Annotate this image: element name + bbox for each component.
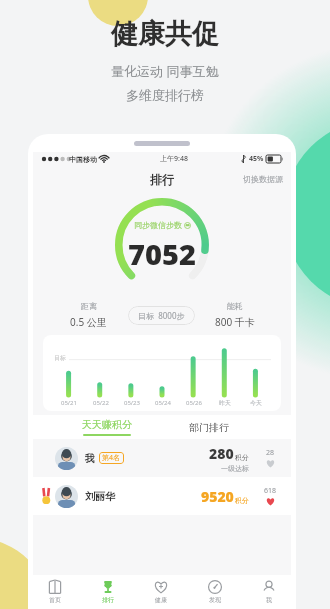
button[interactable]: Like <box>261 486 279 506</box>
staticText: 首页 <box>49 596 61 604</box>
staticText: 05/26 <box>186 399 202 407</box>
staticText: 距离 <box>81 301 97 311</box>
staticText: 能耗 <box>227 301 243 311</box>
staticText: 9520 <box>201 487 234 506</box>
staticText: 0.5 公里 <box>70 315 107 329</box>
staticText: 第4名 <box>102 453 121 463</box>
staticText: 280 <box>209 444 234 463</box>
button[interactable]: 天天赚积分 <box>76 418 138 436</box>
button[interactable]: 发现 <box>188 575 242 609</box>
staticText: 我 <box>85 452 95 465</box>
staticText: 上午9:48 <box>160 154 188 164</box>
staticText: 积分 <box>235 496 249 505</box>
staticText: 28 <box>266 448 275 458</box>
staticText: 05/23 <box>124 399 140 407</box>
staticText: 健康共促 <box>111 17 219 51</box>
button[interactable]: 刘丽华 <box>33 477 291 515</box>
button[interactable]: 健康 <box>134 575 188 609</box>
staticText: 同步微信步数 <box>134 220 182 230</box>
staticText: 天天赚积分 <box>82 418 132 431</box>
staticText: 积分 <box>235 453 249 462</box>
staticText: 618 <box>264 486 277 496</box>
staticText: 45% <box>249 154 264 164</box>
staticText: 7052 <box>128 234 196 273</box>
staticText: 昨天 <box>219 399 231 407</box>
button[interactable]: 切换数据源 <box>235 170 291 188</box>
button[interactable]: 我 <box>242 575 296 609</box>
staticText: 排行 <box>102 596 114 604</box>
staticText: 部门排行 <box>189 421 229 434</box>
staticText: 刘丽华 <box>85 490 115 503</box>
button[interactable]: Like <box>261 448 279 468</box>
button[interactable]: 首页 <box>28 575 81 609</box>
staticText: 健康 <box>155 596 167 604</box>
staticText: 05/22 <box>93 399 109 407</box>
staticText: 排行 <box>150 172 174 187</box>
staticText: 我 <box>266 596 272 604</box>
button[interactable]: 目标 8000步 <box>128 306 195 325</box>
staticText: 05/21 <box>61 399 77 407</box>
staticText: 05/24 <box>155 399 171 407</box>
button[interactable]: 同步微信步数 <box>132 218 193 232</box>
button[interactable]: 我 <box>33 439 291 477</box>
staticText: 目标 8000步 <box>138 310 185 321</box>
staticText: 一级达标 <box>221 464 249 473</box>
staticText: 多维度排行榜 <box>126 87 204 103</box>
staticText: 800 千卡 <box>215 315 255 329</box>
staticText: 发现 <box>209 596 221 604</box>
button[interactable]: 排行 <box>81 575 134 609</box>
button[interactable]: 部门排行 <box>183 421 235 434</box>
staticText: 目标 <box>54 354 66 362</box>
staticText: 今天 <box>250 399 262 407</box>
staticText: 切换数据源 <box>243 174 283 184</box>
staticText: 量化运动 同事互勉 <box>111 62 219 80</box>
staticText: 中国移动 <box>69 155 97 164</box>
